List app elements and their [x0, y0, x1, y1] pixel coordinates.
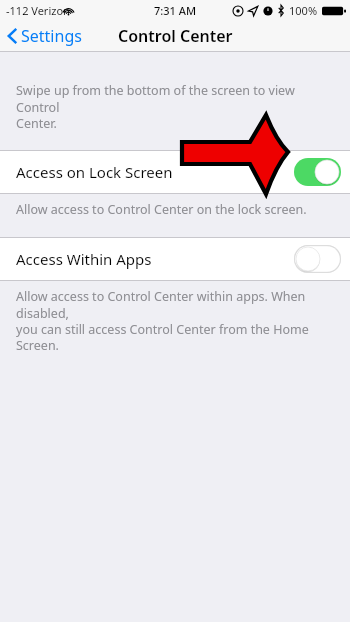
- button[interactable]: Access Within Apps: [0, 237, 350, 281]
- staticText: 7:31 AM: [154, 3, 197, 18]
- staticText: Allow access to Control Center within ap…: [16, 288, 334, 353]
- button[interactable]: Settings: [8, 25, 82, 47]
- button[interactable]: Access on Lock Screen: [0, 150, 350, 194]
- button[interactable]: Toggle on: [294, 158, 341, 186]
- button[interactable]: Toggle off: [294, 245, 341, 273]
- staticText: Allow access to Control Center on the lo…: [16, 201, 334, 218]
- staticText: Access Within Apps: [16, 249, 152, 269]
- staticText: Settings: [21, 25, 82, 47]
- staticText: Swipe up from the bottom of the screen t…: [16, 82, 338, 131]
- staticText: 100%: [289, 3, 318, 18]
- staticText: Control Center: [118, 25, 233, 47]
- staticText: Access on Lock Screen: [16, 162, 173, 182]
- staticText: -112 Verizon: [6, 3, 70, 18]
